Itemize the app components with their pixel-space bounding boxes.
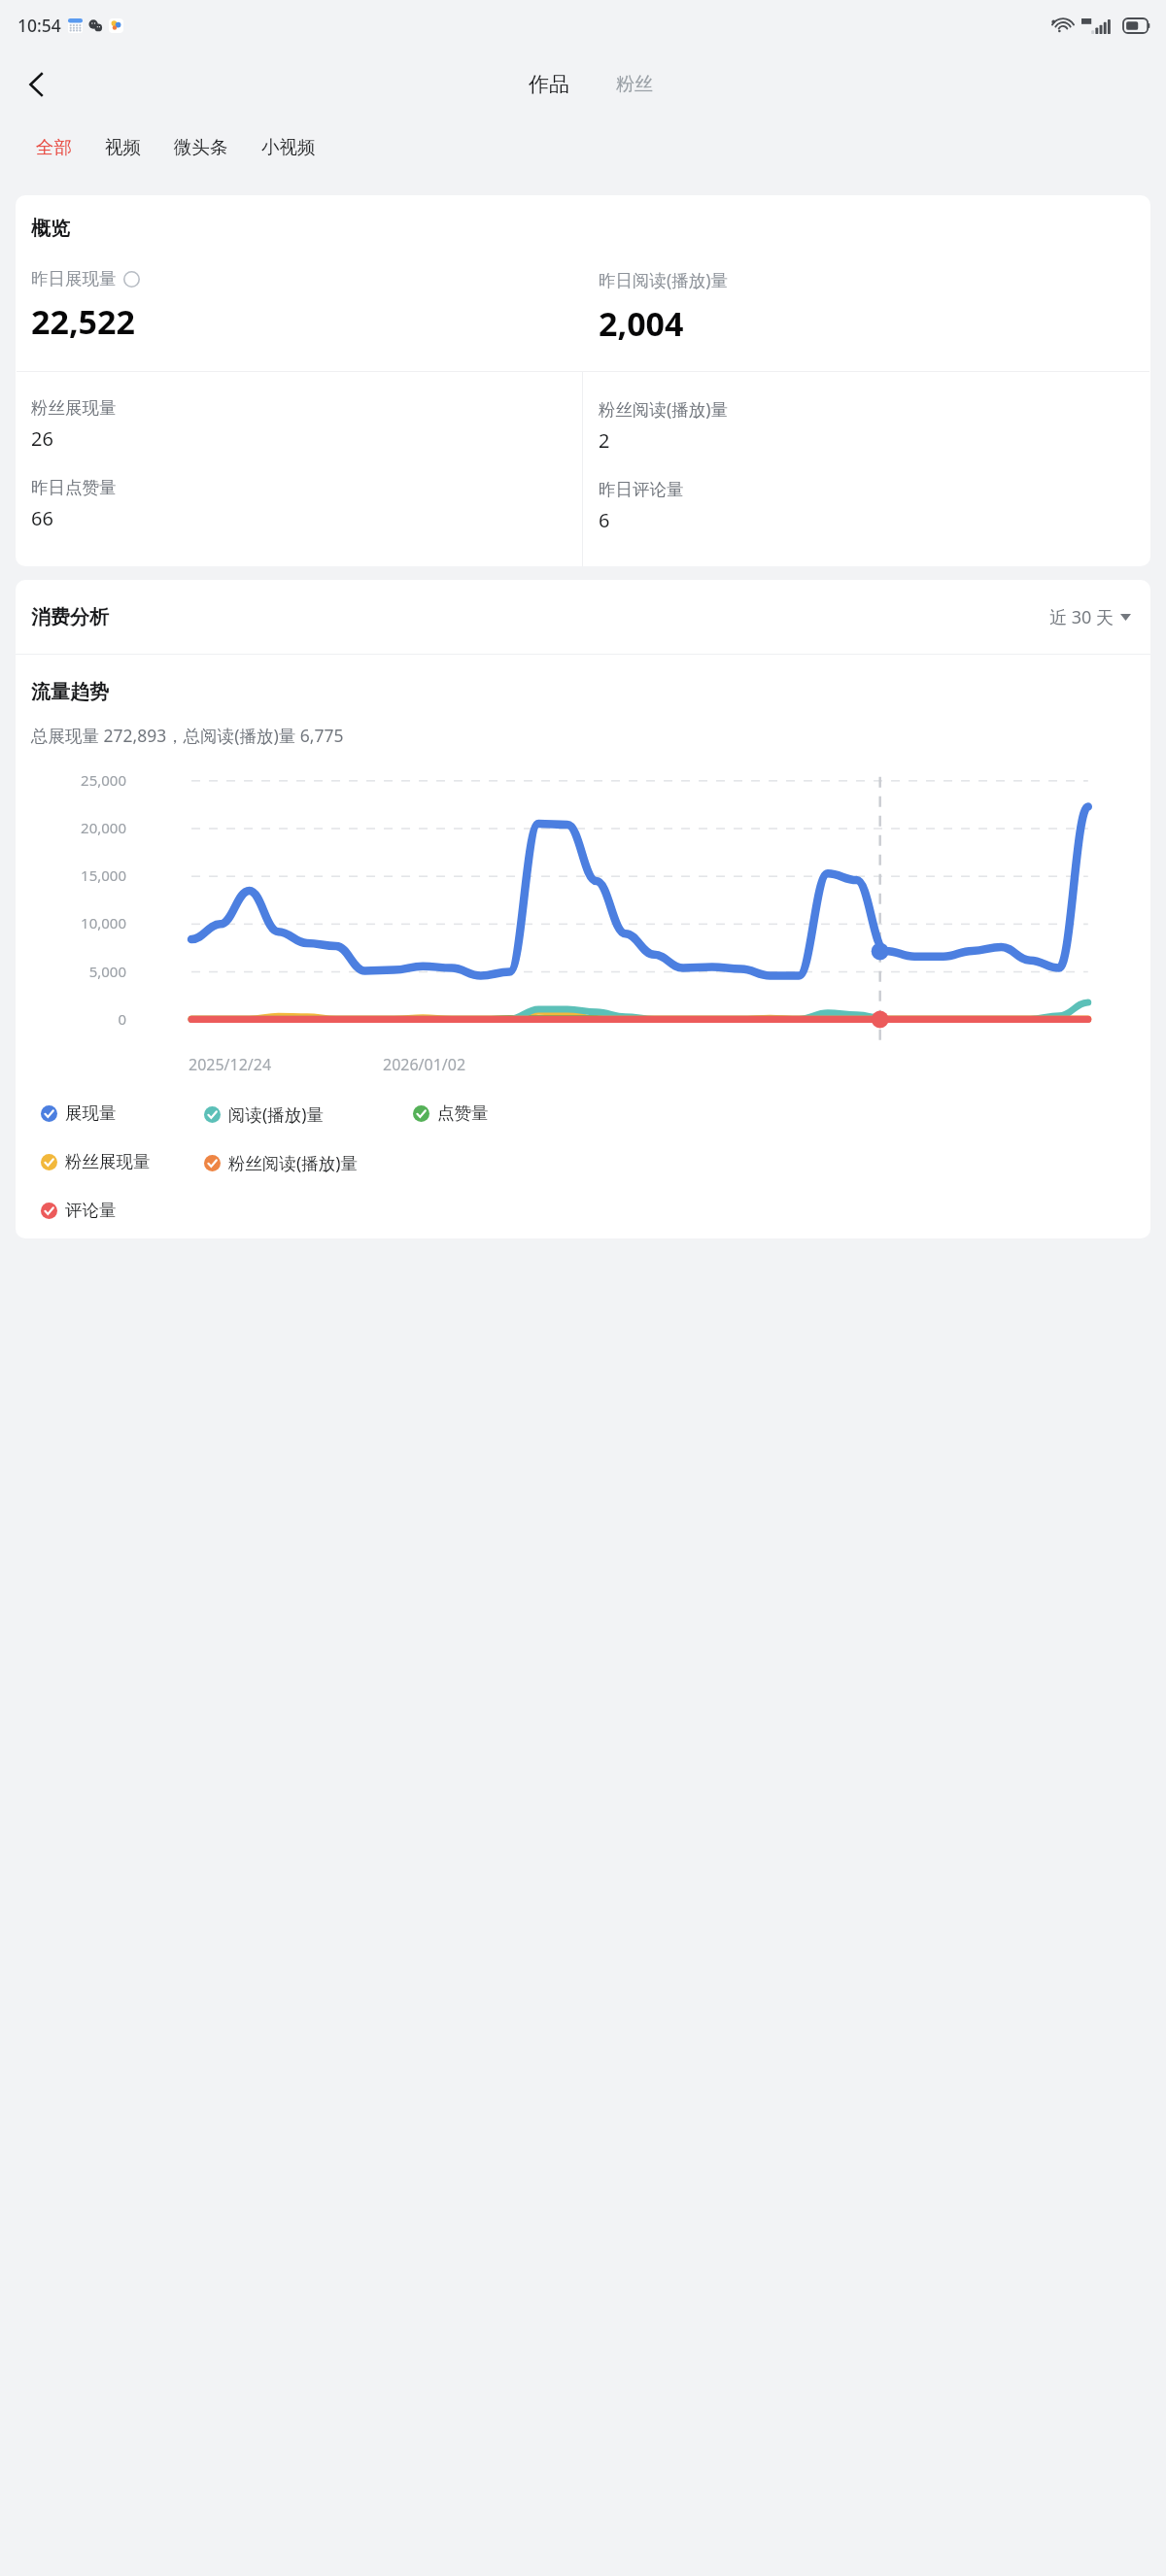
button[interactable]: 粉丝阅读(播放)量	[204, 1149, 358, 1176]
button[interactable]: 阅读(播放)量	[204, 1101, 413, 1128]
button[interactable]: 近 30 天	[1046, 599, 1135, 635]
button[interactable]: 小视频	[245, 128, 332, 166]
button[interactable]: 视频	[88, 128, 157, 166]
staticText: 昨日点赞量	[31, 477, 117, 498]
staticText: 2	[599, 427, 610, 454]
staticText: 概览	[31, 217, 70, 241]
staticText: 22,522	[31, 299, 135, 344]
staticText: 2026/01/02	[383, 1054, 466, 1075]
staticText: 昨日阅读(播放)量	[599, 268, 728, 291]
staticText: 粉丝	[616, 73, 653, 96]
staticText: 粉丝展现量	[65, 1151, 151, 1172]
staticText: 5,000	[16, 962, 126, 981]
staticText: 6	[599, 507, 610, 533]
staticText: 全部	[36, 136, 72, 158]
staticText: 点赞量	[437, 1102, 489, 1124]
button[interactable]: 作品	[517, 66, 581, 103]
staticText: 粉丝阅读(播放)量	[228, 1151, 358, 1174]
staticText: 近 30 天	[1049, 605, 1114, 629]
staticText: 展现量	[65, 1102, 117, 1124]
staticText: 昨日评论量	[599, 479, 684, 500]
button[interactable]: 粉丝	[604, 67, 665, 102]
button[interactable]: 粉丝展现量	[41, 1149, 204, 1174]
staticText: 20,000	[16, 818, 126, 837]
staticText: 2,004	[599, 301, 684, 346]
button[interactable]: 评论量	[41, 1198, 117, 1223]
staticText: 微头条	[174, 136, 228, 158]
staticText: 小视频	[261, 136, 316, 158]
staticText: 流量趋势	[31, 680, 109, 704]
staticText: 66	[31, 505, 53, 531]
staticText: 阅读(播放)量	[228, 1102, 324, 1126]
button[interactable]: Back	[10, 57, 64, 112]
staticText: 消费分析	[31, 605, 109, 629]
staticText: 昨日展现量	[31, 268, 117, 289]
staticText: 粉丝展现量	[31, 397, 117, 419]
staticText: 25,000	[16, 770, 126, 790]
staticText: 15,000	[16, 865, 126, 885]
staticText: 粉丝阅读(播放)量	[599, 397, 728, 421]
staticText: 视频	[105, 136, 141, 158]
staticText: 评论量	[65, 1200, 117, 1221]
button[interactable]: 点赞量	[413, 1101, 489, 1126]
staticText: 2025/12/24	[189, 1054, 272, 1075]
staticText: 10:54	[17, 14, 61, 37]
button[interactable]: 微头条	[157, 128, 245, 166]
staticText: 0	[16, 1009, 126, 1029]
staticText: 26	[31, 425, 53, 452]
staticText: 作品	[529, 72, 569, 97]
button[interactable]: 全部	[19, 128, 88, 166]
staticText: 总展现量 272,893，总阅读(播放)量 6,775	[31, 724, 344, 747]
staticText: 10,000	[16, 913, 126, 932]
button[interactable]: 展现量	[41, 1101, 204, 1126]
